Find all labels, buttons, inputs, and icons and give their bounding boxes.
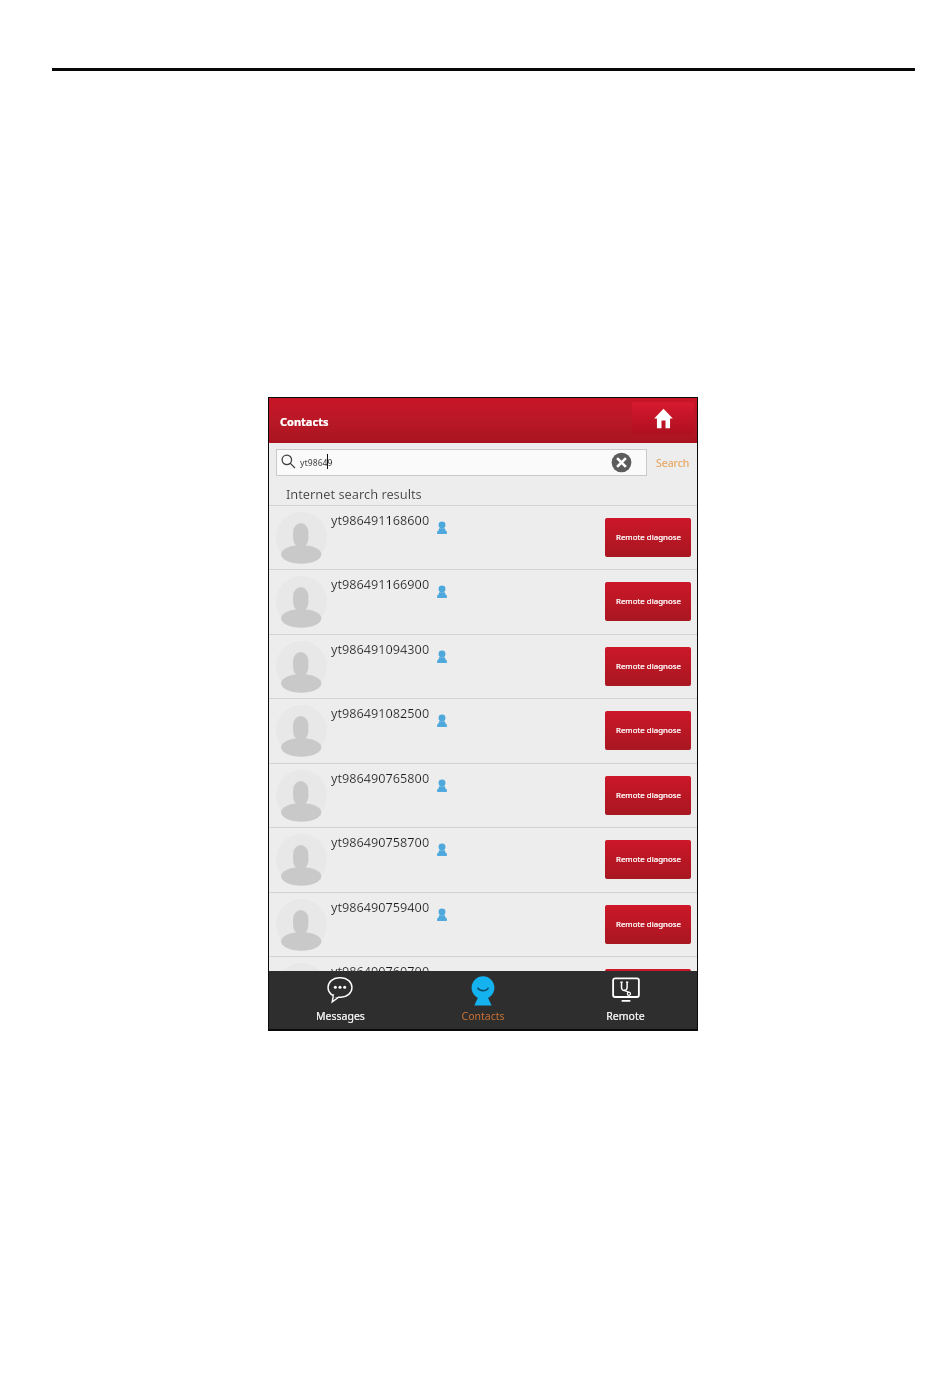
button[interactable]: Contacts [411, 971, 554, 1029]
staticText: yt986491082500 [331, 704, 430, 721]
button[interactable]: yt986490758700 [269, 827, 697, 892]
button[interactable]: Clear search [611, 452, 632, 473]
staticText: yt986490759400 [331, 898, 430, 915]
staticText: Remote diagnose [616, 854, 681, 865]
staticText: yt986490758700 [331, 833, 430, 850]
button[interactable]: yt986491082500 [269, 698, 697, 763]
staticText: Remote diagnose [616, 790, 681, 801]
staticText: yt986490760700 [331, 962, 430, 979]
staticText: Remote diagnose [616, 532, 681, 543]
button[interactable]: Remote diagnose [605, 711, 691, 750]
staticText: Remote [606, 1009, 645, 1023]
staticText: Remote diagnose [616, 983, 681, 994]
staticText: yt986490765800 [331, 769, 430, 786]
button[interactable]: yt986491166900 [269, 569, 697, 634]
button[interactable]: yt986491168600 [269, 505, 697, 570]
button[interactable]: Remote diagnose [605, 969, 691, 1008]
staticText: Contacts [280, 414, 329, 429]
button[interactable]: Remote diagnose [605, 776, 691, 815]
button[interactable]: Remote diagnose [605, 518, 691, 557]
button[interactable]: yt986490759400 [269, 892, 697, 957]
staticText: Messages [316, 1009, 365, 1023]
staticText: Remote diagnose [616, 919, 681, 930]
button[interactable]: yt986490765800 [269, 763, 697, 828]
button[interactable]: Messages [269, 971, 411, 1029]
staticText: Contacts [461, 1009, 505, 1023]
button[interactable]: Remote [554, 971, 697, 1029]
staticText: yt986491168600 [331, 511, 430, 528]
staticText: yt98649 [300, 457, 333, 469]
button[interactable]: Remote diagnose [605, 840, 691, 879]
staticText: Remote diagnose [616, 661, 681, 672]
button[interactable]: Home [632, 402, 694, 434]
staticText: Remote diagnose [616, 725, 681, 736]
button[interactable]: Remote diagnose [605, 647, 691, 686]
staticText: yt986491166900 [331, 575, 430, 592]
button[interactable]: Search [653, 451, 693, 475]
button[interactable]: yt986490760700 [269, 956, 697, 1021]
button[interactable]: Remote diagnose [605, 905, 691, 944]
button[interactable]: yt98649 [276, 449, 647, 476]
staticText: Internet search results [286, 485, 422, 502]
staticText: yt986491094300 [331, 640, 430, 657]
button[interactable]: yt986491094300 [269, 634, 697, 699]
staticText: Remote diagnose [616, 596, 681, 607]
staticText: Search [656, 456, 690, 470]
button[interactable]: Remote diagnose [605, 582, 691, 621]
